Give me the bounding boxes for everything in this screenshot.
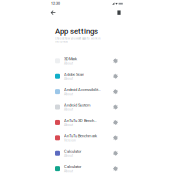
- staticText: 12:30: [51, 2, 60, 6]
- staticText: Adobe Scan: [64, 72, 84, 77]
- button[interactable]: AnTuTu 3D Bench…: [43, 115, 129, 130]
- staticText: About: [64, 92, 73, 96]
- staticText: Android System: [64, 103, 91, 107]
- staticText: Android Accessibilit…: [64, 87, 101, 92]
- staticText: AnTuTu Benchmark: [64, 134, 97, 138]
- staticText: About: [64, 108, 73, 111]
- staticText: Choose how you want apps to work in this…: [55, 37, 100, 43]
- staticText: App settings: [55, 27, 98, 36]
- button[interactable]: Calculator: [43, 161, 129, 176]
- staticText: Version: [64, 139, 76, 142]
- staticText: About: [64, 154, 73, 158]
- button[interactable]: Back: [47, 8, 59, 17]
- staticText: Calculator: [64, 149, 81, 154]
- button[interactable]: AnTuTu Benchmark: [43, 130, 129, 146]
- button[interactable]: Android System: [43, 99, 129, 115]
- staticText: 3DMark: [64, 57, 77, 61]
- button[interactable]: Adobe Scan: [43, 69, 129, 84]
- button[interactable]: 3DMark: [43, 53, 129, 69]
- button[interactable]: Help: [113, 8, 125, 17]
- staticText: Calculator: [64, 164, 81, 169]
- button[interactable]: Calculator: [43, 146, 129, 161]
- button[interactable]: Android Accessibilit…: [43, 84, 129, 99]
- staticText: About: [64, 169, 73, 173]
- staticText: About: [64, 77, 73, 81]
- staticText: AnTuTu 3D Bench…: [64, 118, 97, 123]
- staticText: About: [64, 123, 73, 127]
- staticText: About: [64, 62, 73, 65]
